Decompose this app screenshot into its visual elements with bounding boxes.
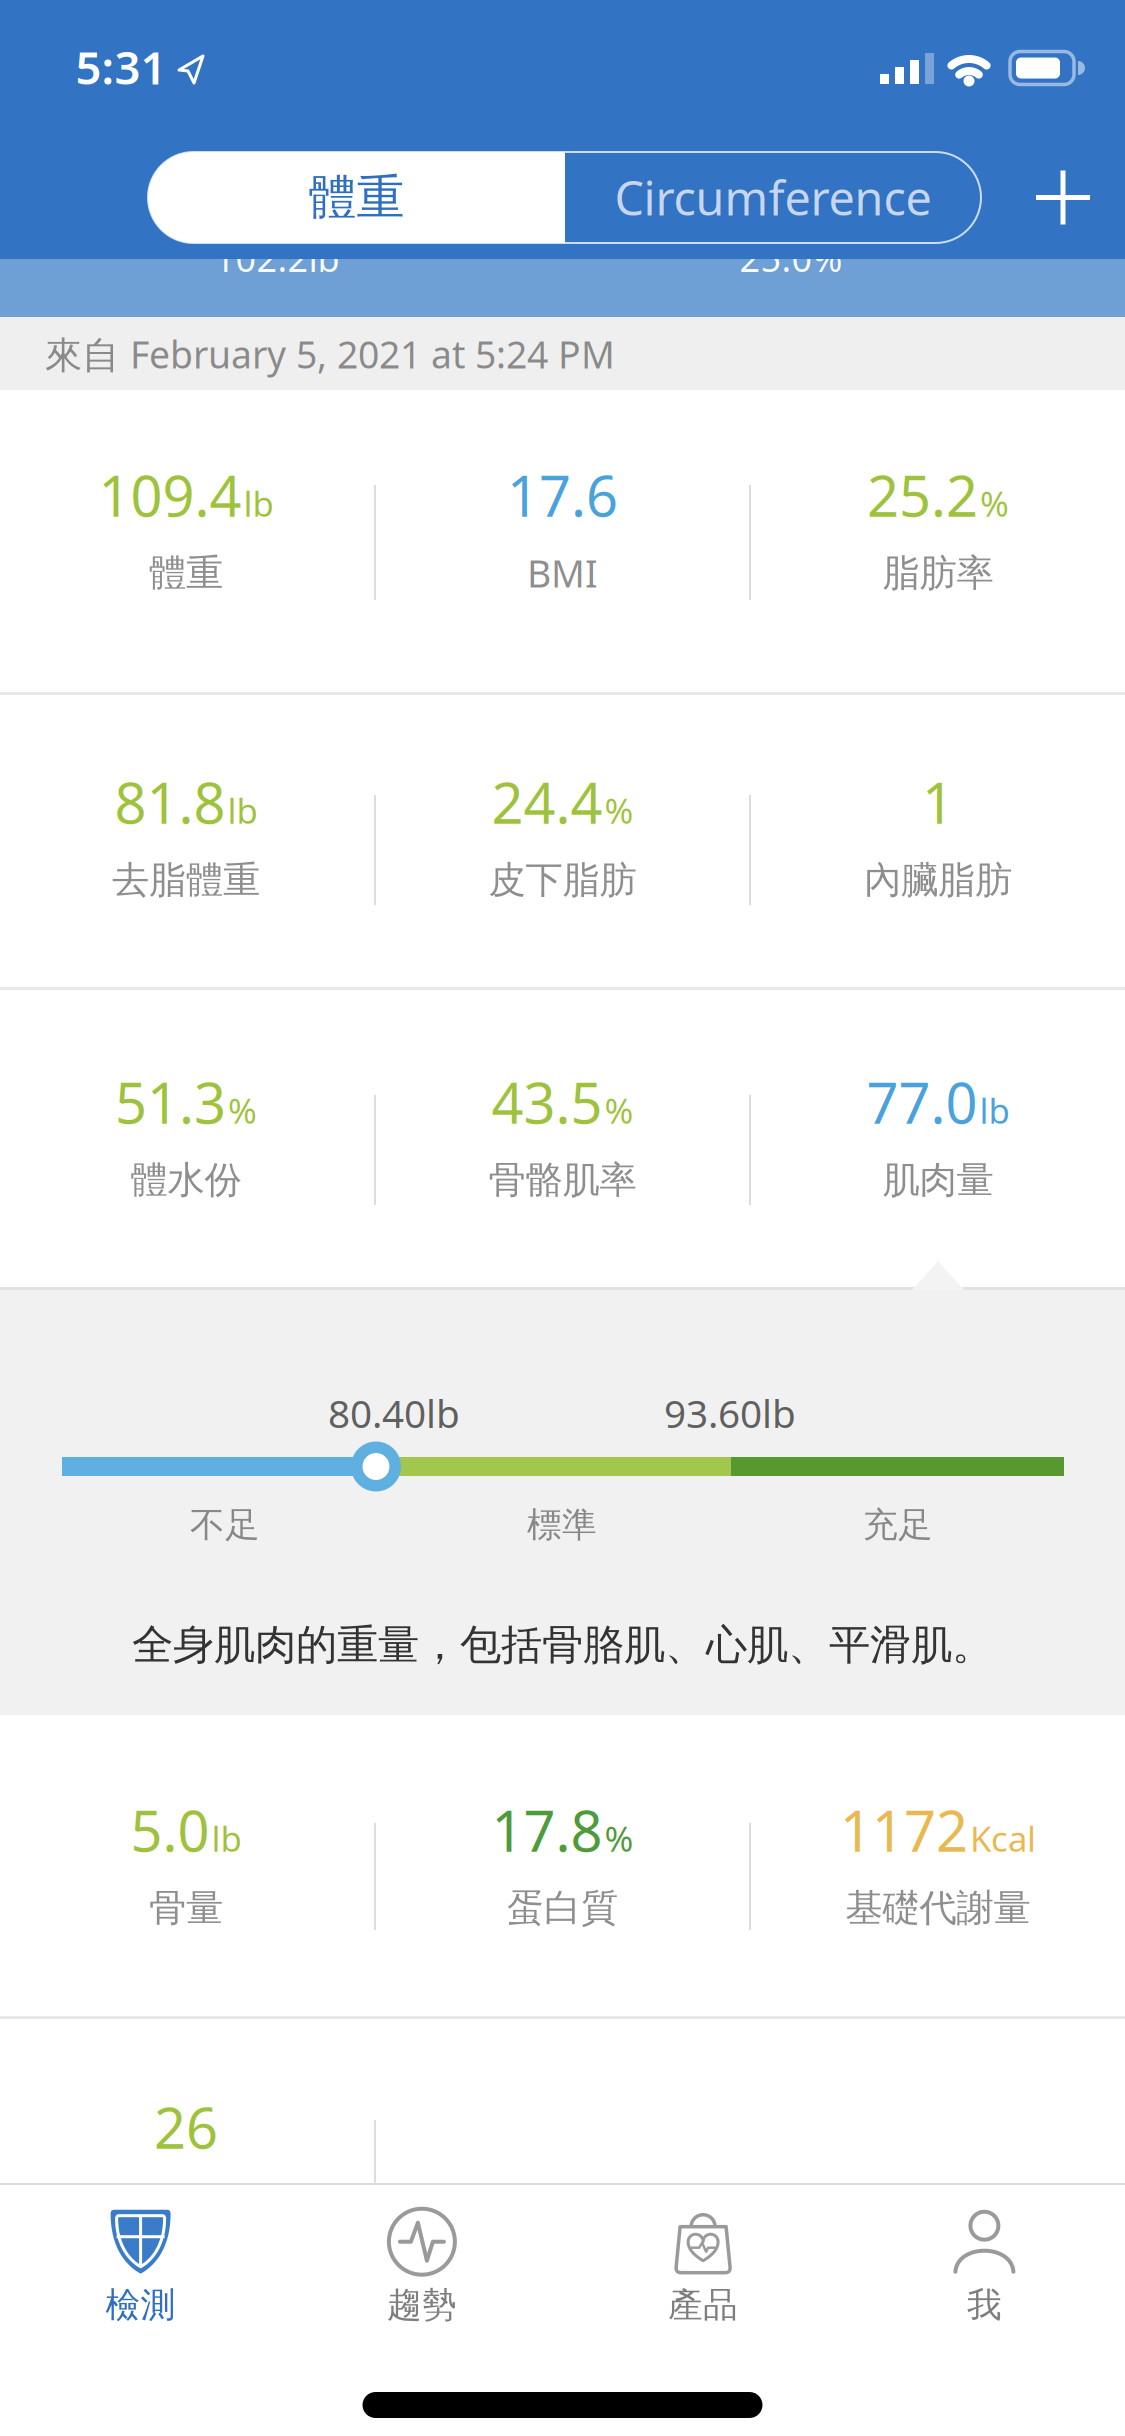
staticText: 趨勢 xyxy=(387,2284,457,2326)
staticText: 產品 xyxy=(668,2284,738,2326)
staticText: 1 xyxy=(922,765,954,839)
staticText: % xyxy=(604,1815,633,1861)
button[interactable]: 26 xyxy=(16,2080,356,2240)
staticText: % xyxy=(604,787,633,833)
staticText: lb xyxy=(979,1087,1009,1133)
staticText: 體水份 xyxy=(130,1157,241,1203)
staticText: 51.3 xyxy=(115,1065,226,1139)
staticText: 標準 xyxy=(527,1504,597,1546)
button[interactable]: 17.6 xyxy=(392,448,732,608)
staticText: 內臟脂肪 xyxy=(864,857,1012,903)
button[interactable]: 24.4 xyxy=(392,755,732,915)
staticText: 43.5 xyxy=(491,1065,602,1139)
staticText: 109.4 xyxy=(98,458,241,532)
staticText: 25.2 xyxy=(867,458,978,532)
staticText: 5.0 xyxy=(130,1793,209,1867)
staticText: % xyxy=(604,1087,633,1133)
staticText: 體重 xyxy=(149,550,223,596)
staticText: 102.2lb xyxy=(214,234,339,282)
staticText: 基礎代謝量 xyxy=(845,1885,1030,1931)
button[interactable]: 我 xyxy=(874,2191,1094,2341)
button[interactable]: 51.3 xyxy=(16,1055,356,1215)
staticText: 不足 xyxy=(190,1504,260,1546)
staticText: lb xyxy=(243,480,273,526)
button[interactable]: 檢測 xyxy=(31,2191,251,2341)
staticText: 1172 xyxy=(840,1793,968,1867)
staticText: 骨量 xyxy=(149,1885,223,1931)
staticText: 全身肌肉的重量，包括骨胳肌、心肌、平滑肌。 xyxy=(132,1620,993,1670)
staticText: % xyxy=(228,1087,257,1133)
staticText: Circumference xyxy=(614,166,931,228)
staticText: lb xyxy=(227,787,257,833)
staticText: 體重 xyxy=(308,168,404,227)
staticText: BMI xyxy=(527,548,598,598)
button[interactable]: 1 xyxy=(768,755,1108,915)
staticText: Kcal xyxy=(970,1815,1036,1861)
staticText: % xyxy=(980,480,1009,526)
button[interactable]: 5.0 xyxy=(16,1783,356,1943)
staticText: 肌肉量 xyxy=(882,1157,993,1203)
staticText: 充足 xyxy=(863,1504,933,1546)
staticText: 17.6 xyxy=(507,458,618,532)
staticText: 皮下脂肪 xyxy=(488,857,636,903)
button[interactable]: 17.8 xyxy=(392,1783,732,1943)
button[interactable]: 趨勢 xyxy=(312,2191,532,2341)
staticText: 17.8 xyxy=(491,1793,602,1867)
staticText: 檢測 xyxy=(106,2284,176,2326)
button[interactable]: 產品 xyxy=(593,2191,813,2341)
staticText: 93.60lb xyxy=(664,1387,796,1439)
button[interactable]: 109.4 xyxy=(16,448,356,608)
staticText: 26 xyxy=(154,2090,218,2164)
staticText: 80.40lb xyxy=(328,1387,460,1439)
button[interactable]: 1172 xyxy=(768,1783,1108,1943)
staticText: 77.0 xyxy=(866,1065,977,1139)
button[interactable]: 25.2 xyxy=(768,448,1108,608)
staticText: 脂肪率 xyxy=(882,550,993,596)
staticText: 去脂體重 xyxy=(112,857,260,903)
button[interactable]: 體重 xyxy=(148,152,565,243)
staticText: 蛋白質 xyxy=(507,1885,618,1931)
button[interactable]: Circumference xyxy=(565,152,981,243)
staticText: 我 xyxy=(967,2284,1002,2326)
staticText: 25.0% xyxy=(739,234,842,282)
staticText: 24.4 xyxy=(491,765,602,839)
button[interactable]: 43.5 xyxy=(392,1055,732,1215)
staticText: lb xyxy=(211,1815,241,1861)
button[interactable]: Add xyxy=(1033,167,1093,227)
staticText: 骨骼肌率 xyxy=(488,1157,636,1203)
staticText: 81.8 xyxy=(114,765,225,839)
staticText: 來自 February 5, 2021 at 5:24 PM xyxy=(45,329,615,379)
button[interactable]: 77.0 xyxy=(768,1055,1108,1215)
staticText: 5:31 xyxy=(75,37,166,97)
button[interactable]: 81.8 xyxy=(16,755,356,915)
